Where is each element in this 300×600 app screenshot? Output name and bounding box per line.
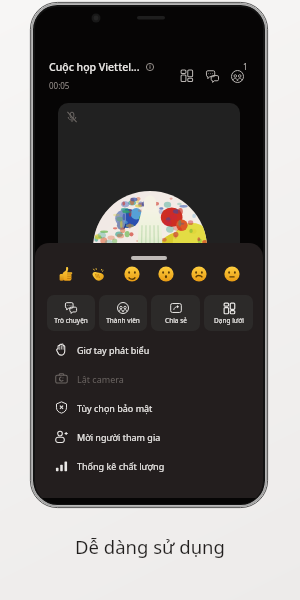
staticText: Dễ dàng sử dụng bbox=[75, 534, 225, 559]
staticText: Thống kê chất lượng bbox=[77, 460, 165, 472]
staticText: Trò chuyện bbox=[54, 316, 88, 325]
button[interactable]: Trò chuyện bbox=[47, 295, 95, 331]
button[interactable]: thumb bbox=[58, 266, 74, 282]
button[interactable]: clap bbox=[91, 266, 107, 282]
button[interactable]: Chia sẻ bbox=[151, 295, 200, 331]
button[interactable]: Thống kê chất lượng bbox=[35, 451, 263, 480]
button[interactable]: surprise bbox=[158, 266, 174, 282]
button[interactable]: sad bbox=[191, 266, 207, 282]
staticText: Mời người tham gia bbox=[77, 431, 161, 443]
button[interactable]: Giơ tay phát biểu bbox=[35, 335, 263, 364]
staticText: Dạng lưới bbox=[214, 316, 244, 325]
staticText: Giơ tay phát biểu bbox=[77, 344, 150, 356]
button[interactable]: Lật camera bbox=[35, 364, 263, 393]
button[interactable]: smile bbox=[124, 266, 140, 282]
button[interactable]: Mời người tham gia bbox=[35, 422, 263, 451]
staticText: 1 bbox=[243, 61, 248, 72]
button[interactable]: Dạng lưới bbox=[176, 65, 197, 86]
staticText: Thành viên bbox=[106, 316, 140, 325]
button[interactable]: Thông tin bbox=[145, 62, 155, 72]
button[interactable]: Trò chuyện bbox=[201, 65, 223, 87]
button[interactable]: Thành viên bbox=[225, 62, 249, 86]
staticText: Lật camera bbox=[77, 373, 124, 385]
staticText: Cuộc họp Viettel... bbox=[49, 60, 140, 74]
staticText: Chia sẻ bbox=[165, 316, 187, 325]
button[interactable]: Tùy chọn bảo mật bbox=[35, 393, 263, 422]
button[interactable]: Thành viên bbox=[99, 295, 147, 331]
staticText: Tùy chọn bảo mật bbox=[77, 402, 153, 414]
button[interactable]: Dạng lưới bbox=[204, 295, 253, 331]
button[interactable]: neutral bbox=[224, 266, 240, 282]
staticText: 00:05 bbox=[49, 80, 70, 91]
